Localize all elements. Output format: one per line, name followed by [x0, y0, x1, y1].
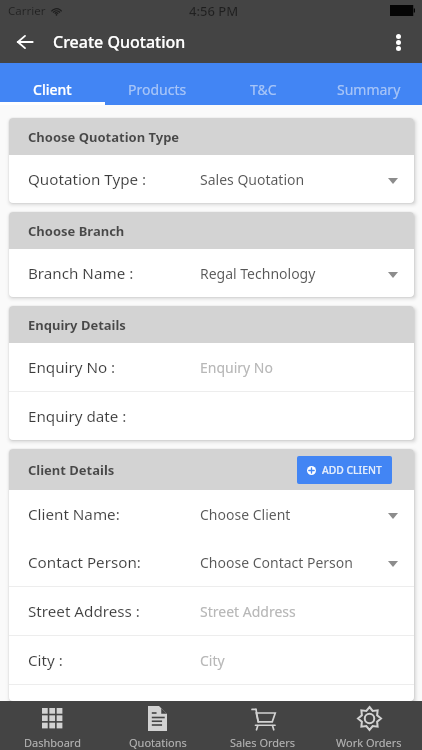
staticText: Sales Orders	[230, 735, 296, 750]
staticText: Branch Name :	[28, 263, 134, 284]
button[interactable]: Contact Person:	[9, 538, 414, 586]
button[interactable]: Products	[105, 63, 210, 105]
staticText: Enquiry No	[200, 358, 273, 377]
staticText: Street Address :	[28, 601, 140, 622]
staticText: Enquiry Details	[28, 316, 126, 334]
button[interactable]: Dashboard	[0, 701, 105, 750]
staticText: Enquiry date :	[28, 406, 127, 427]
button[interactable]: Summary	[316, 63, 422, 105]
button[interactable]: Quotation Type :	[9, 155, 414, 203]
button[interactable]: Client	[0, 63, 105, 105]
staticText: Client Details	[28, 461, 115, 479]
staticText: Regal Technology	[200, 264, 316, 283]
staticText: 4:56 PM	[189, 2, 239, 20]
staticText: Client	[33, 80, 72, 99]
button[interactable]: Enquiry date :	[9, 392, 414, 440]
button[interactable]: T&C	[210, 63, 316, 105]
button[interactable]: Branch Name :	[9, 249, 414, 297]
staticText: Quotation Type :	[28, 169, 147, 190]
button[interactable]: More options	[375, 21, 422, 63]
staticText: Choose Contact Person	[200, 553, 353, 572]
staticText: ADD CLIENT	[322, 463, 382, 477]
staticText: Sales Quotation	[200, 170, 305, 189]
staticText: Client Name:	[28, 504, 120, 525]
button[interactable]: Work Orders	[316, 701, 422, 750]
staticText: Carrier	[8, 3, 46, 19]
button[interactable]: Back	[0, 21, 49, 63]
button[interactable]: Street Address :	[9, 587, 414, 635]
staticText: Summary	[337, 80, 401, 99]
button[interactable]: ADD CLIENT	[297, 456, 392, 484]
staticText: Choose Branch	[28, 222, 125, 240]
staticText: Dashboard	[24, 735, 81, 750]
staticText: Work Orders	[336, 735, 402, 750]
staticText: Create Quotation	[53, 31, 186, 53]
staticText: Street Address	[200, 602, 296, 621]
button[interactable]: Client Name:	[9, 490, 414, 538]
button[interactable]: Quotations	[105, 701, 210, 750]
staticText: T&C	[250, 80, 277, 99]
staticText: Enquiry No :	[28, 357, 116, 378]
staticText: Choose Quotation Type	[28, 128, 180, 146]
staticText: Quotations	[129, 735, 187, 750]
staticText: City :	[28, 650, 63, 671]
staticText: Choose Client	[200, 505, 291, 524]
button[interactable]: Enquiry No :	[9, 343, 414, 391]
staticText: City	[200, 651, 225, 670]
button[interactable]: City :	[9, 636, 414, 684]
staticText: Contact Person:	[28, 552, 141, 573]
button[interactable]: Sales Orders	[210, 701, 316, 750]
staticText: Products	[128, 80, 187, 99]
